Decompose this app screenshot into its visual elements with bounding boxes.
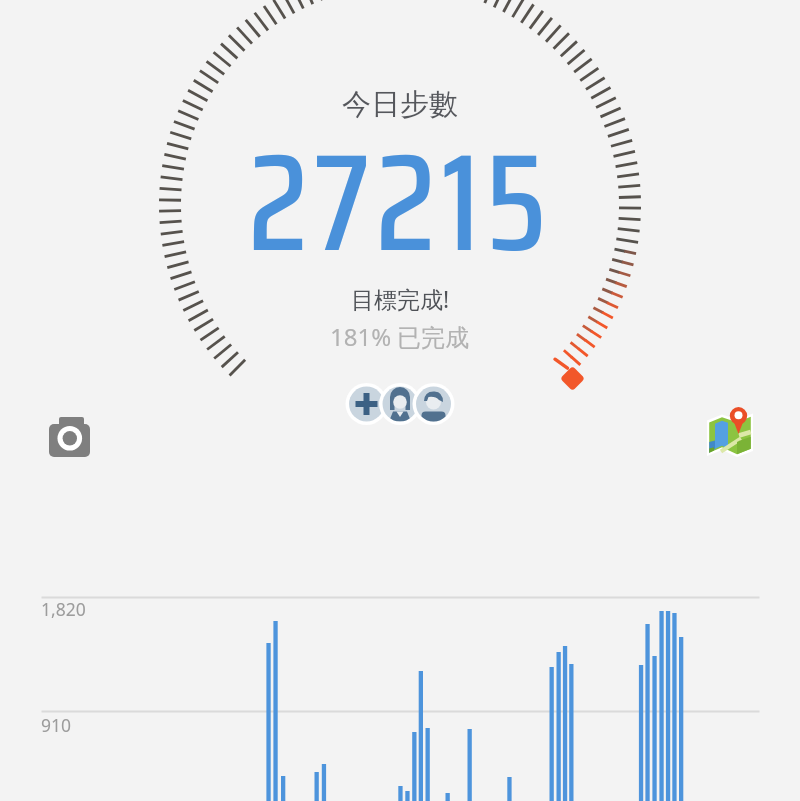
button[interactable] (40, 408, 100, 468)
button[interactable] (335, 375, 465, 433)
staticText: 27215 (248, 95, 553, 311)
staticText: 181% 已完成 (330, 320, 470, 353)
button[interactable] (695, 398, 760, 463)
staticText: 目標完成! (351, 283, 450, 314)
staticText: 今日步數 (342, 86, 458, 123)
staticText: 910 (41, 713, 72, 737)
staticText: 1,820 (41, 597, 86, 621)
